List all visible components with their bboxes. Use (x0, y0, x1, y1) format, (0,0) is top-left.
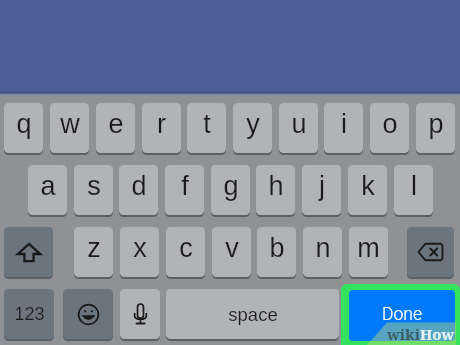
staticText: space (228, 304, 278, 325)
staticText: Done (382, 304, 422, 325)
staticText: v (225, 233, 239, 263)
button[interactable]: t (187, 103, 226, 153)
button[interactable]: Emoji (63, 289, 113, 339)
button[interactable]: s (74, 165, 113, 215)
staticText: b (269, 233, 285, 263)
staticText: 123 (14, 304, 45, 324)
button[interactable]: z (74, 227, 113, 277)
staticText: i (341, 109, 347, 139)
staticText: g (223, 171, 239, 201)
button[interactable]: k (348, 165, 387, 215)
staticText: a (40, 171, 56, 201)
button[interactable]: Done (349, 290, 455, 341)
staticText: k (361, 171, 375, 201)
button[interactable]: d (119, 165, 158, 215)
staticText: e (108, 109, 124, 139)
staticText: p (428, 109, 444, 139)
staticText: x (133, 233, 147, 263)
button[interactable]: m (349, 227, 388, 277)
staticText: u (291, 109, 307, 139)
button[interactable]: l (394, 165, 433, 215)
button[interactable]: Backspace (407, 227, 454, 277)
button[interactable]: v (212, 227, 251, 277)
staticText: d (131, 171, 147, 201)
staticText: m (357, 233, 380, 263)
staticText: wiki (387, 324, 420, 344)
button[interactable]: h (256, 165, 295, 215)
staticText: How (420, 324, 455, 344)
button[interactable]: b (257, 227, 296, 277)
staticText: h (268, 171, 284, 201)
button[interactable]: p (416, 103, 455, 153)
staticText: z (87, 233, 101, 263)
staticText: y (246, 109, 260, 139)
button[interactable]: Shift (4, 227, 53, 277)
staticText: c (179, 233, 193, 263)
button[interactable]: n (303, 227, 342, 277)
button[interactable]: g (211, 165, 250, 215)
staticText: r (157, 109, 166, 139)
staticText: n (315, 233, 331, 263)
button[interactable]: i (324, 103, 363, 153)
button[interactable]: j (302, 165, 341, 215)
button[interactable]: o (370, 103, 409, 153)
staticText: q (16, 109, 32, 139)
button[interactable]: a (28, 165, 67, 215)
button[interactable]: y (233, 103, 272, 153)
staticText: w (60, 109, 80, 139)
button[interactable]: 123 (4, 289, 54, 339)
button[interactable]: r (142, 103, 181, 153)
button[interactable]: w (50, 103, 89, 153)
button[interactable]: space (166, 289, 339, 339)
staticText: j (319, 171, 325, 201)
button[interactable]: f (165, 165, 204, 215)
button[interactable]: c (166, 227, 205, 277)
button[interactable]: x (120, 227, 159, 277)
button[interactable]: u (279, 103, 318, 153)
staticText: f (181, 171, 189, 201)
button[interactable]: e (96, 103, 135, 153)
staticText: o (382, 109, 398, 139)
staticText: t (203, 109, 211, 139)
staticText: s (87, 171, 101, 201)
button[interactable]: q (4, 103, 43, 153)
staticText: l (411, 171, 417, 201)
button[interactable]: Dictate (120, 289, 160, 339)
